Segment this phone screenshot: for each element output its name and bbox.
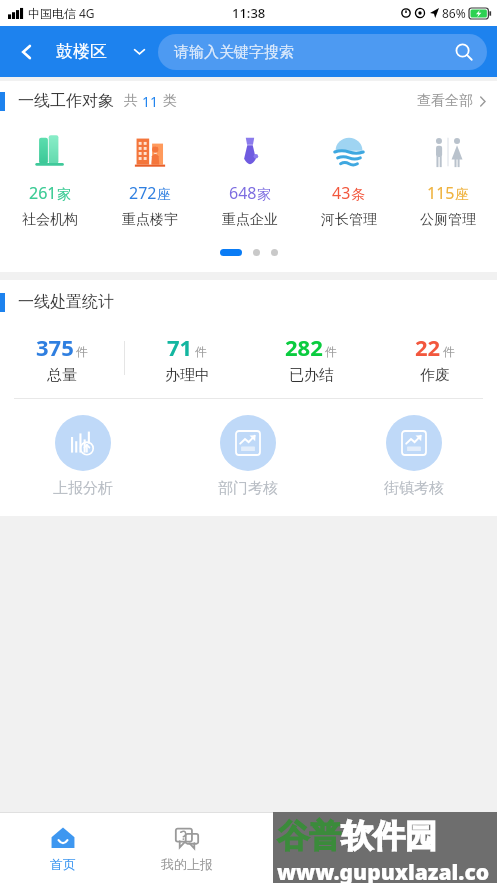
staticText: 11:38 bbox=[232, 4, 266, 22]
staticText: 22 bbox=[415, 332, 441, 362]
staticText: 我的上报 bbox=[161, 856, 213, 872]
button[interactable]: 首页 bbox=[0, 813, 125, 883]
staticText: 公厕管理 bbox=[420, 211, 476, 229]
button[interactable]: 我的 bbox=[373, 813, 497, 883]
staticText: 375 bbox=[36, 332, 74, 362]
staticText: 我的服务 bbox=[285, 856, 337, 872]
button[interactable]: 648 bbox=[200, 129, 299, 231]
staticText: 282 bbox=[285, 332, 323, 362]
staticText: 件 bbox=[325, 344, 337, 359]
staticText: 我的 bbox=[422, 856, 448, 872]
staticText: 115 bbox=[427, 182, 455, 204]
staticText: 272 bbox=[129, 182, 157, 204]
staticText: 类 bbox=[163, 92, 177, 110]
button[interactable]: 查看全部 bbox=[407, 88, 497, 114]
staticText: 上报分析 bbox=[53, 479, 113, 498]
staticText: 社会机构 bbox=[22, 211, 78, 229]
button[interactable]: 22 bbox=[373, 332, 497, 384]
staticText: 11 bbox=[142, 92, 159, 111]
button[interactable]: 282 bbox=[249, 332, 373, 384]
staticText: 请输入关键字搜索 bbox=[174, 43, 294, 62]
button[interactable]: 261 bbox=[0, 129, 100, 231]
staticText: 648 bbox=[229, 182, 257, 204]
staticText: 软件园 bbox=[341, 816, 437, 856]
staticText: 谷普 bbox=[277, 816, 341, 856]
staticText: 河长管理 bbox=[321, 211, 377, 229]
staticText: www.gupuxlazal.com bbox=[277, 858, 497, 883]
staticText: 总量 bbox=[47, 366, 77, 384]
button[interactable]: 我的服务 bbox=[249, 813, 373, 883]
staticText: 作废 bbox=[420, 366, 450, 384]
button[interactable]: 115 bbox=[398, 129, 497, 231]
staticText: 部门考核 bbox=[218, 479, 278, 498]
button[interactable]: 272 bbox=[100, 129, 200, 231]
staticText: 共 bbox=[124, 92, 138, 110]
button[interactable]: 街镇考核 bbox=[331, 415, 497, 498]
staticText: 家 bbox=[57, 186, 71, 204]
button[interactable]: 43 bbox=[299, 129, 398, 231]
button[interactable]: 请输入关键字搜索 bbox=[158, 34, 487, 70]
staticText: 重点楼宇 bbox=[122, 211, 178, 229]
staticText: 86% bbox=[442, 5, 466, 21]
staticText: 一线工作对象 bbox=[18, 91, 114, 111]
button[interactable]: 部门考核 bbox=[165, 415, 331, 498]
staticText: 件 bbox=[76, 344, 88, 359]
button[interactable]: 上报分析 bbox=[0, 415, 165, 498]
staticText: 街镇考核 bbox=[384, 479, 444, 498]
staticText: 鼓楼区 bbox=[56, 41, 107, 62]
staticText: 家 bbox=[257, 186, 271, 204]
staticText: 重点企业 bbox=[222, 211, 278, 229]
button[interactable]: 我的上报 bbox=[125, 813, 249, 883]
button[interactable]: 71 bbox=[125, 332, 249, 384]
staticText: 件 bbox=[195, 344, 207, 359]
staticText: 4G bbox=[79, 5, 95, 21]
staticText: 43 bbox=[332, 182, 351, 204]
staticText: 座 bbox=[455, 186, 469, 204]
staticText: 261 bbox=[29, 182, 57, 204]
staticText: 中国电信 bbox=[28, 6, 76, 21]
button[interactable]: Back bbox=[10, 35, 44, 69]
button[interactable]: 鼓楼区 bbox=[44, 41, 146, 62]
button[interactable]: 375 bbox=[0, 332, 124, 384]
staticText: 座 bbox=[157, 186, 171, 204]
staticText: 件 bbox=[443, 344, 455, 359]
staticText: 首页 bbox=[50, 856, 76, 872]
staticText: 已办结 bbox=[289, 366, 334, 384]
staticText: 条 bbox=[351, 186, 365, 204]
staticText: 一线处置统计 bbox=[18, 292, 114, 312]
staticText: 71 bbox=[167, 332, 193, 362]
staticText: 查看全部 bbox=[417, 92, 473, 110]
staticText: 办理中 bbox=[165, 366, 210, 384]
